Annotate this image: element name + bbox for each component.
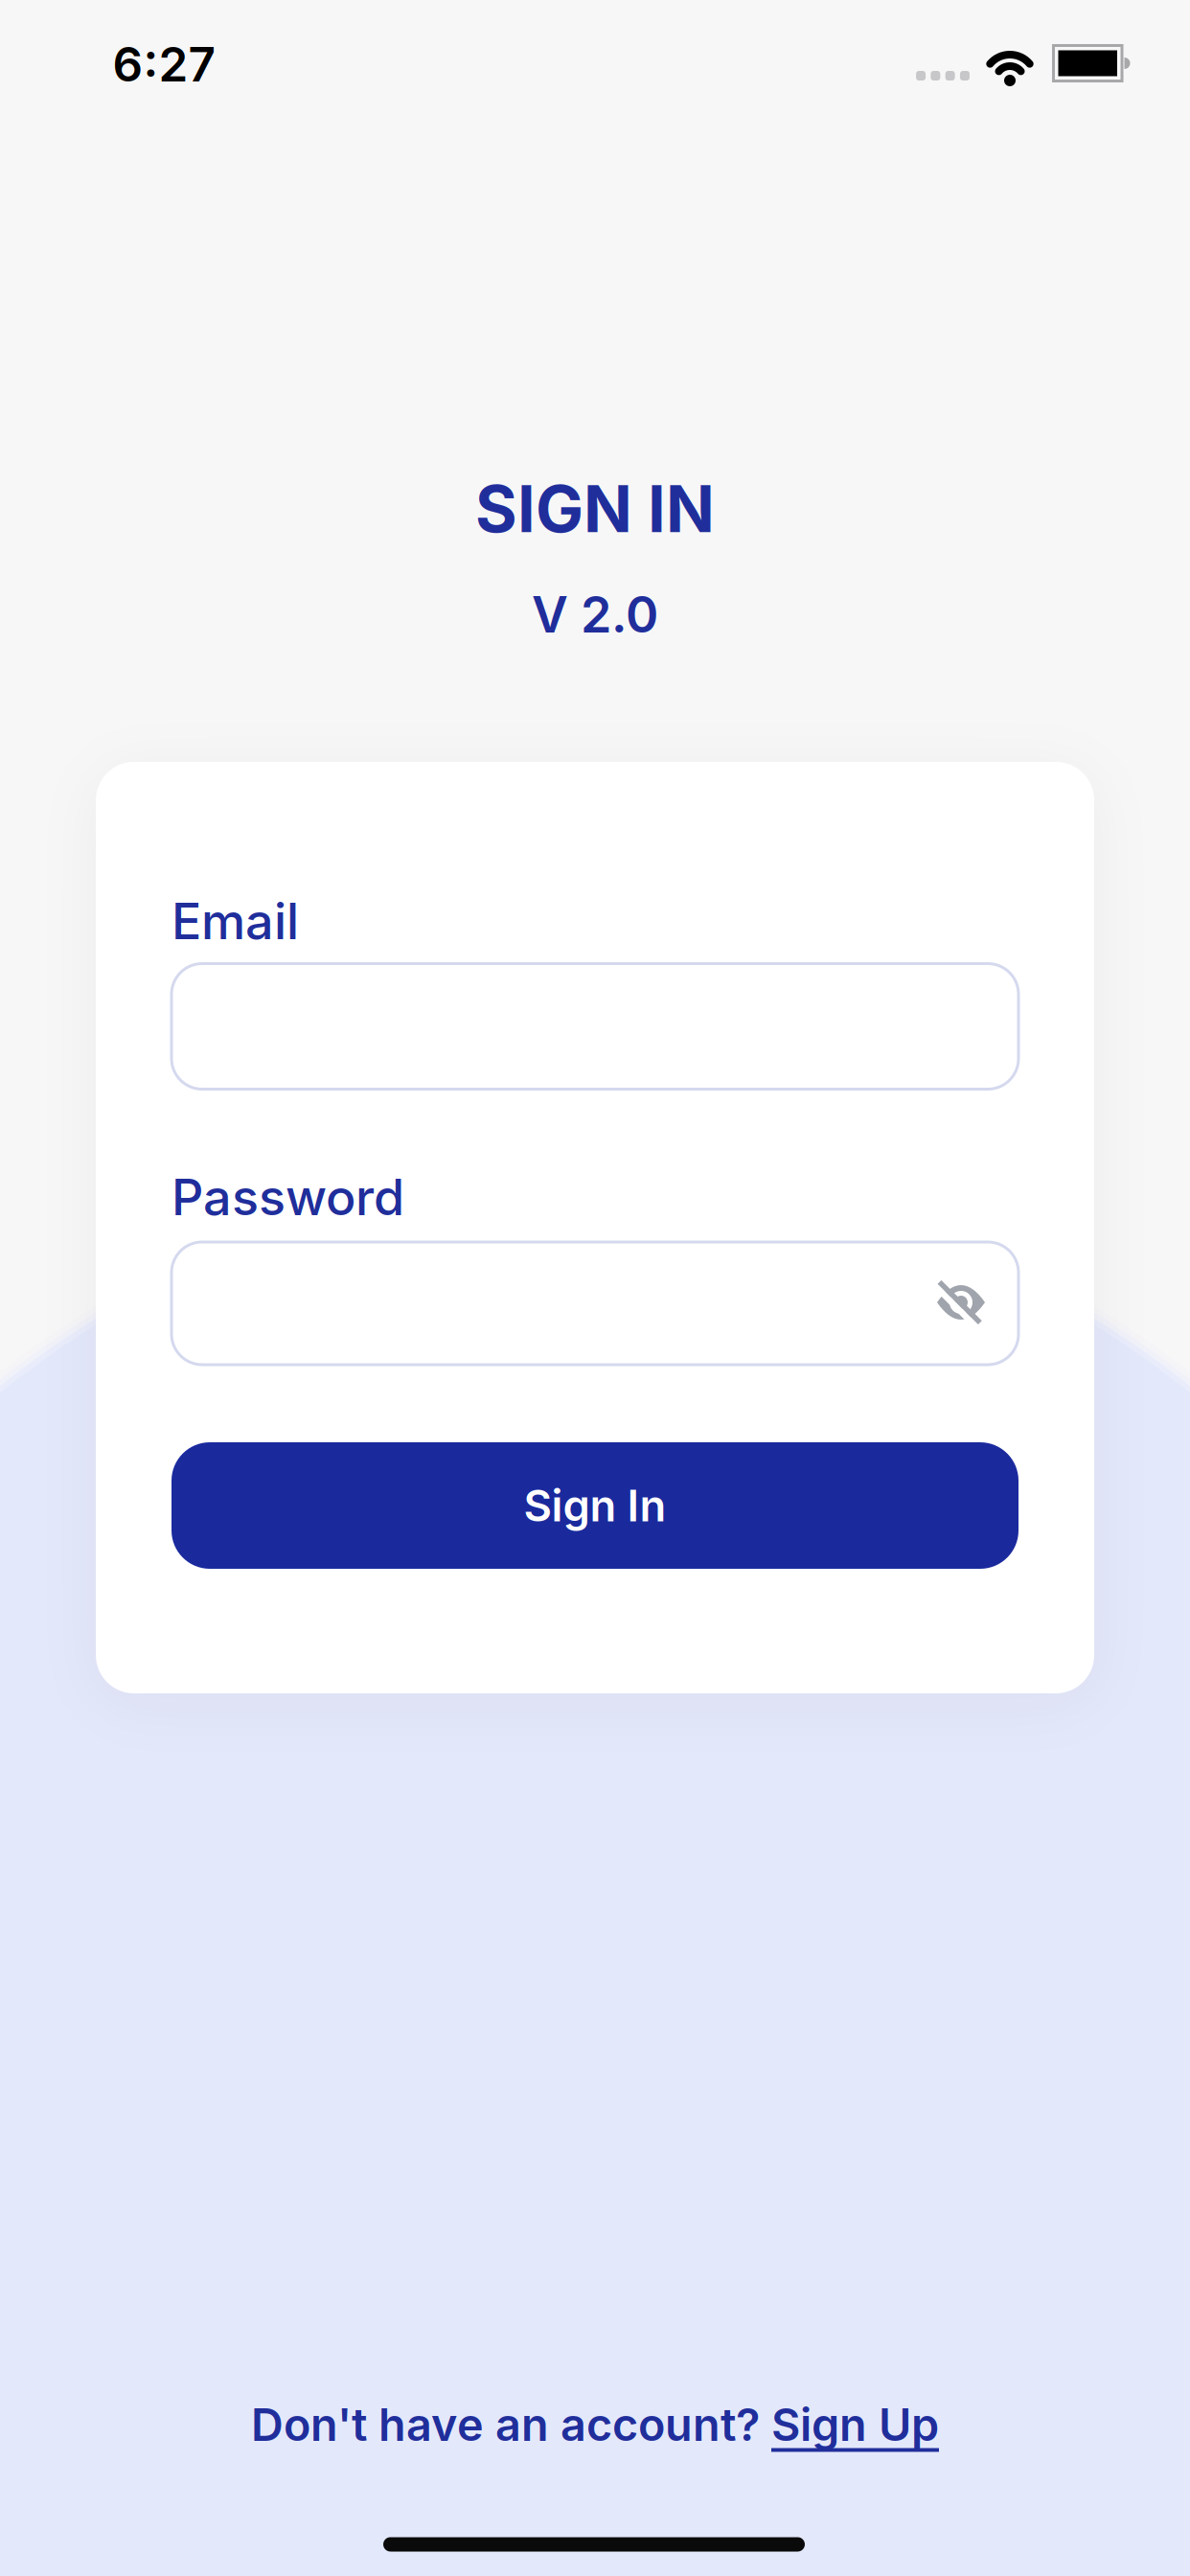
staticText: V 2.0: [532, 584, 658, 644]
staticText: 6:27: [113, 36, 215, 93]
staticText: Sign Up: [771, 2398, 939, 2452]
staticText: Password: [172, 1167, 404, 1227]
button[interactable]: Sign In: [172, 1442, 1018, 1569]
button[interactable]: Email: [172, 964, 1018, 1089]
staticText: Email: [172, 891, 299, 951]
button[interactable]: Password: [172, 1242, 1018, 1365]
button[interactable]: Show password: [925, 1266, 997, 1339]
button[interactable]: Sign Up: [771, 2398, 939, 2452]
staticText: SIGN IN: [475, 470, 715, 548]
staticText: Sign In: [524, 1479, 666, 1532]
staticText: Don't have an account?: [251, 2398, 771, 2452]
